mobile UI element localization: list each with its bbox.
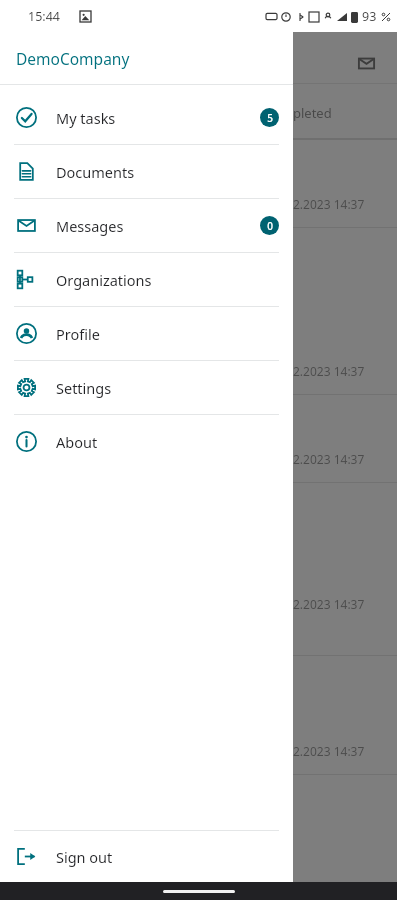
staticText: 2.2023 14:37 [293,196,365,212]
button[interactable]: Messages [349,46,383,80]
staticText: Messages [56,216,124,236]
staticText: 15:44 [28,8,60,25]
staticText: Documents [56,162,135,182]
button[interactable]: Sign out [0,831,293,882]
staticText: Settings [56,378,112,398]
staticText: About [56,432,98,452]
button[interactable]: Messages [0,199,293,252]
button[interactable]: My tasks [0,91,293,144]
staticText: 2.2023 14:37 [293,743,365,759]
staticText: 5 [267,111,273,125]
staticText: pleted [293,104,332,122]
button[interactable]: About [0,415,293,468]
staticText: Organizations [56,270,152,290]
staticText: My tasks [56,108,116,128]
staticText: 93 [362,8,377,25]
staticText: Sign out [56,847,113,867]
staticText: 2.2023 14:37 [293,363,365,379]
button[interactable]: Organizations [0,253,293,306]
staticText: 2.2023 14:37 [293,451,365,467]
button[interactable]: Settings [0,361,293,414]
staticText: DemoCompany [16,48,130,69]
button[interactable]: Profile [0,307,293,360]
staticText: 0 [267,219,273,233]
button[interactable]: Documents [0,145,293,198]
staticText: Profile [56,324,100,344]
staticText: 2.2023 14:37 [293,596,365,612]
